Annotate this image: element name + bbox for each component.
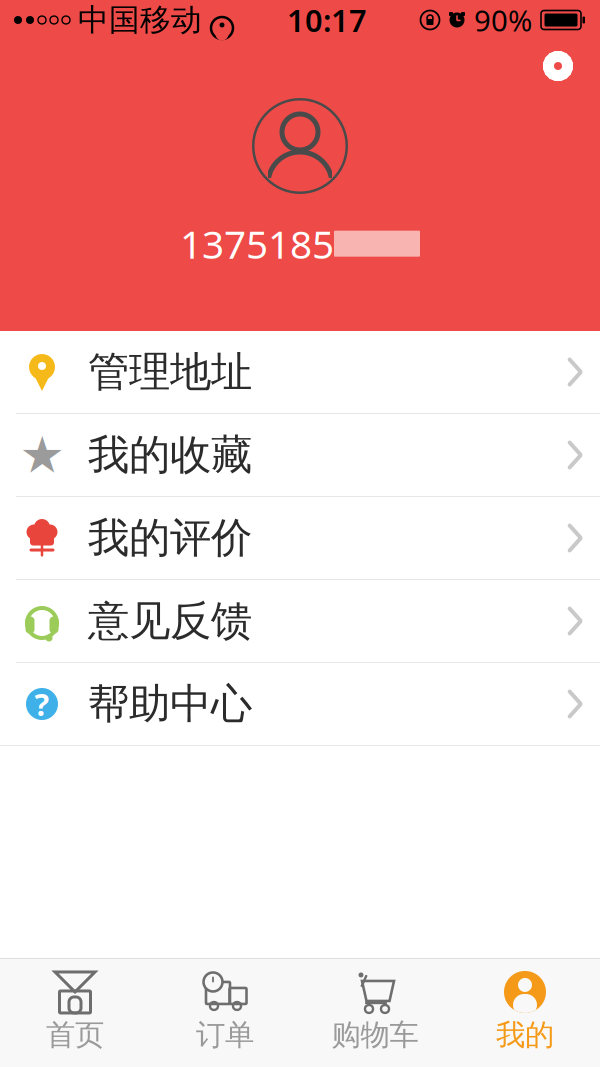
staticText: 订单 [196, 1017, 254, 1053]
staticText: 首页 [46, 1017, 104, 1053]
staticText: 1375185 [180, 218, 334, 269]
button[interactable]: 我的 [450, 963, 600, 1059]
staticText: 我的收藏 [88, 430, 252, 480]
staticText: 管理地址 [88, 347, 252, 397]
staticText: 我的 [496, 1017, 554, 1053]
button[interactable]: 订单 [150, 963, 300, 1059]
staticText: 帮助中心 [88, 679, 252, 729]
staticText: 10:17 [287, 0, 367, 40]
staticText: 我的评价 [88, 513, 252, 563]
button[interactable]: ? [0, 663, 600, 746]
staticText: ★ [19, 426, 64, 484]
staticText: ? [34, 684, 49, 724]
staticText: 意见反馈 [88, 596, 252, 646]
staticText: 购物车 [331, 1017, 418, 1053]
button[interactable]: ★ [0, 414, 600, 497]
button[interactable]: 意见反馈 [0, 580, 600, 663]
button[interactable]: 管理地址 [0, 331, 600, 414]
staticText: 90% [474, 0, 532, 39]
button[interactable]: 购物车 [300, 963, 450, 1059]
button[interactable]: 我的评价 [0, 497, 600, 580]
button[interactable]: Settings [532, 40, 584, 92]
staticText: 中国移动 [78, 1, 202, 39]
button[interactable]: 首页 [0, 963, 150, 1059]
